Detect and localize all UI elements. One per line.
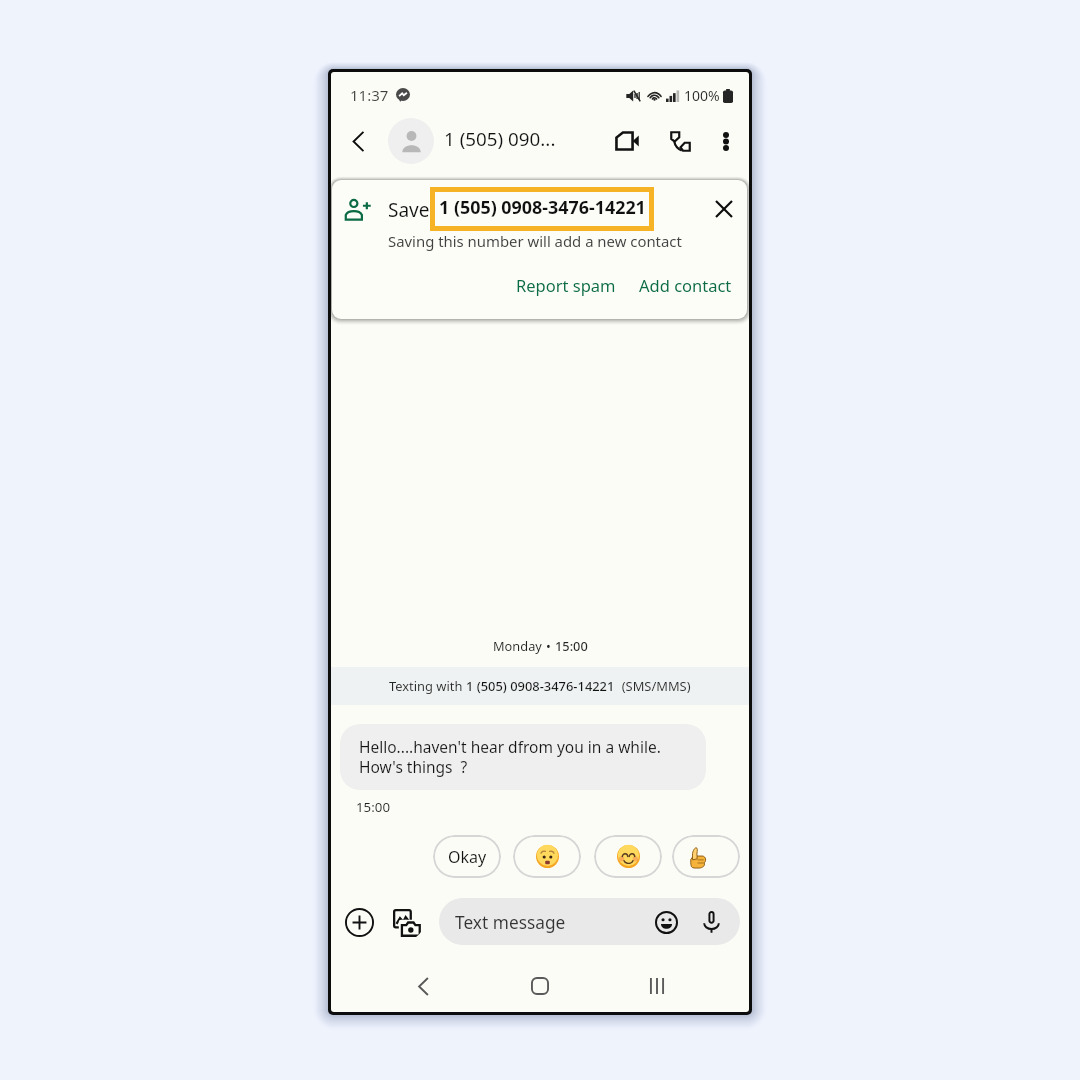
staticText: Hello....haven't hear dfrom you in a whi… xyxy=(359,736,661,778)
staticText: 15:00 xyxy=(356,798,390,816)
staticText: Text message xyxy=(455,911,566,935)
button[interactable]: Video call xyxy=(608,122,646,160)
button[interactable]: More options xyxy=(709,124,743,158)
staticText: Add contact xyxy=(639,274,732,296)
button[interactable]: Gallery xyxy=(388,904,424,940)
staticText: Texting with xyxy=(389,677,466,695)
button[interactable]: Report spam xyxy=(510,268,622,302)
button[interactable]: Back xyxy=(401,964,445,1008)
staticText: 1 (505) 0908-3476-14221 xyxy=(439,195,646,219)
button[interactable]: Home xyxy=(518,964,562,1008)
staticText: 15:00 xyxy=(555,637,588,654)
button[interactable]: Close xyxy=(708,193,739,224)
button[interactable]: Hello....haven't hear dfrom you in a whi… xyxy=(340,724,706,790)
staticText: Save xyxy=(388,197,430,223)
button[interactable]: Recents xyxy=(635,964,679,1008)
button[interactable]: Emoji xyxy=(651,907,681,937)
staticText: 100% xyxy=(684,86,720,105)
staticText: Monday xyxy=(493,637,546,654)
staticText: Okay xyxy=(448,846,487,868)
staticText: 1 (505) 090... xyxy=(444,126,556,152)
button[interactable]: Thumbs up reply xyxy=(672,835,740,878)
button[interactable]: Voice input xyxy=(696,907,726,937)
staticText: (SMS/MMS) xyxy=(615,677,691,695)
button[interactable]: Call xyxy=(661,122,699,160)
staticText: 1 (505) 0908-3476-14221 xyxy=(466,677,615,695)
button[interactable]: Okay xyxy=(433,835,501,878)
button[interactable]: Add contact xyxy=(633,268,738,302)
button[interactable]: Smiling face reply xyxy=(594,835,662,878)
button[interactable]: Add attachment xyxy=(341,904,377,940)
staticText: 11:37 xyxy=(350,85,389,105)
staticText: Saving this number will add a new contac… xyxy=(388,231,682,251)
button[interactable]: Worried face reply xyxy=(513,835,581,878)
staticText: • xyxy=(546,637,555,654)
staticText: Report spam xyxy=(516,274,616,296)
button[interactable]: Back xyxy=(341,124,375,158)
button[interactable]: Text message xyxy=(439,898,740,945)
